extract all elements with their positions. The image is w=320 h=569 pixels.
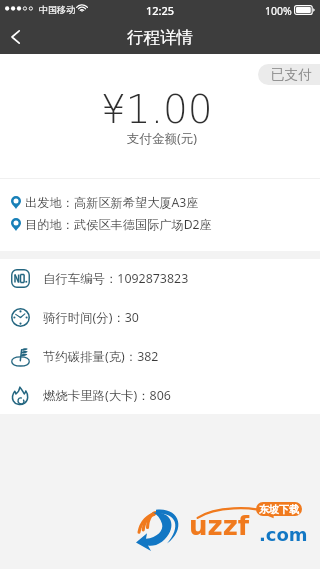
staticText: 东坡下载 <box>259 503 299 516</box>
staticText: .com <box>259 524 308 545</box>
staticText: 中国移动 <box>39 4 75 15</box>
button[interactable]: 自行车编号：1092873823 <box>0 259 320 298</box>
button[interactable]: 目的地： <box>0 213 320 235</box>
staticText: 行程详情 <box>127 27 193 48</box>
staticText: 节约碳排量(克)：382 <box>43 348 159 365</box>
staticText: 100% <box>265 4 292 18</box>
staticText: 出发地： <box>25 195 74 210</box>
staticText: 骑行时间(分)：30 <box>43 309 139 326</box>
button[interactable]: 已支付 <box>258 64 320 85</box>
staticText: 已支付 <box>271 66 312 83</box>
staticText: uzzf <box>189 511 250 541</box>
button[interactable]: 节约碳排量(克)：382 <box>0 337 320 376</box>
button[interactable]: 燃烧卡里路(大卡)：806 <box>0 376 320 414</box>
staticText: 支付金额(元) <box>127 130 198 147</box>
staticText: 高新区新希望大厦A3座 <box>74 194 199 211</box>
staticText: 自行车编号：1092873823 <box>43 270 189 287</box>
button[interactable]: Back <box>0 20 44 54</box>
staticText: ¥1.00 <box>101 87 213 132</box>
button[interactable]: 骑行时间(分)：30 <box>0 298 320 337</box>
staticText: 燃烧卡里路(大卡)：806 <box>43 387 171 404</box>
staticText: 武侯区丰德国际广场D2座 <box>74 216 212 233</box>
staticText: 12:25 <box>146 3 175 18</box>
staticText: 目的地： <box>25 217 74 232</box>
button[interactable]: 出发地： <box>0 191 320 213</box>
